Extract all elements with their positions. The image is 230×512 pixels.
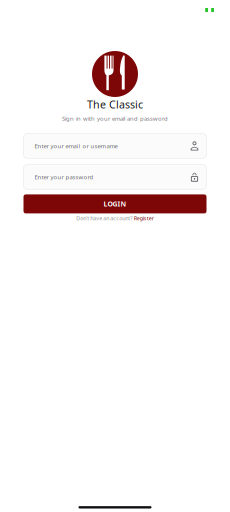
- staticText: Register: [134, 214, 154, 222]
- staticText: LOGIN: [103, 199, 126, 209]
- staticText: Enter your password: [34, 173, 93, 181]
- staticText: The Classic: [87, 97, 143, 111]
- staticText: Enter your email or username: [34, 142, 117, 150]
- staticText: Don't have an account?: [76, 214, 132, 222]
- staticText: Sign in with your email and password: [62, 114, 168, 122]
- button[interactable]: Don't have an account?: [76, 214, 154, 222]
- button[interactable]: LOGIN: [23, 194, 206, 213]
